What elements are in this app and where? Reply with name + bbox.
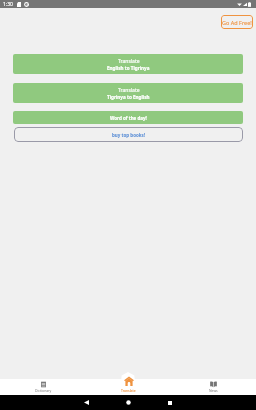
staticText: Translate <box>118 87 140 94</box>
button[interactable]: Word of the day! <box>13 111 243 124</box>
staticText: Word of the day! <box>110 115 147 121</box>
button[interactable]: Dictionary <box>0 379 86 395</box>
button[interactable]: News <box>171 379 256 395</box>
staticText: Tigrinya to English <box>107 94 150 100</box>
staticText: Go Ad Free! <box>222 19 252 26</box>
button[interactable]: Recent apps <box>149 395 191 410</box>
button[interactable]: buy top books! <box>14 127 243 142</box>
staticText: Translate <box>118 58 140 65</box>
button[interactable]: Go Ad Free! <box>221 15 253 29</box>
button[interactable]: Translate <box>13 83 243 103</box>
staticText: News <box>209 388 218 393</box>
staticText: Dictionary <box>35 388 52 393</box>
staticText: buy top books! <box>112 132 146 138</box>
button[interactable]: Translate <box>86 379 171 395</box>
staticText: 1:30 <box>3 1 13 8</box>
staticText: English to Tigrinya <box>107 65 150 71</box>
button[interactable]: Translate <box>13 54 243 74</box>
button[interactable]: Home <box>107 395 149 410</box>
button[interactable]: Back <box>65 395 107 410</box>
staticText: Translate <box>121 388 136 393</box>
